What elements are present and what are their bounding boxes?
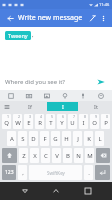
staticText: V [55,152,59,160]
staticText: 3 [29,114,32,119]
button[interactable]: 5 [46,114,55,129]
staticText: , [32,31,34,39]
staticText: If [28,103,32,110]
button[interactable]: More options [98,13,108,23]
button[interactable]: Attach [87,13,98,24]
staticText: M [87,152,93,160]
staticText: 2 [18,114,21,119]
staticText: 8 [84,114,87,119]
button[interactable]: F [40,131,49,146]
button[interactable]: Keyboard menu [0,101,14,112]
button[interactable]: Shift [2,148,17,163]
staticText: E [27,119,31,127]
staticText: R [38,119,42,127]
button[interactable]: Voice [78,91,88,101]
staticText: 123 [5,169,14,176]
button[interactable]: Location [60,91,70,101]
staticText: H [64,135,69,143]
staticText: Where did you see it? [5,78,95,86]
staticText: J [77,135,79,143]
staticText: 1 [7,114,10,119]
button[interactable]: H [62,131,71,146]
staticText: I [82,119,85,127]
button[interactable]: C [41,148,50,163]
button[interactable]: L [95,131,104,146]
button[interactable]: Stickers [6,91,16,101]
button[interactable]: Numbers [2,165,16,180]
staticText: L [98,135,102,143]
button[interactable]: 7 [68,114,77,129]
staticText: I [62,103,64,110]
button[interactable]: I [47,102,78,111]
staticText: G [53,135,58,143]
button[interactable]: Gallery [42,91,52,101]
staticText: 5 [51,114,54,119]
button[interactable]: 0 [101,114,110,129]
button[interactable]: Back [18,184,32,198]
staticText: Z [22,152,26,160]
button[interactable]: Back [4,12,16,24]
button[interactable]: 1 [2,114,11,129]
button[interactable]: 2 [13,114,22,129]
button[interactable]: A [7,131,16,146]
button[interactable]: K [84,131,93,146]
button[interactable]: Recents [81,184,95,198]
staticText: W [15,119,21,127]
staticText: X [33,152,37,160]
staticText: It [94,103,98,110]
button[interactable]: D [29,131,38,146]
button[interactable]: Emoji [96,91,106,101]
staticText: 9 [95,114,98,119]
staticText: S [21,135,25,143]
button[interactable]: Camera [24,91,34,101]
button[interactable]: B [63,148,72,163]
staticText: D [31,135,36,143]
staticText: 4 [40,114,43,119]
staticText: K [87,135,91,143]
button[interactable]: Home [49,184,63,198]
button[interactable]: Send [95,76,107,88]
button[interactable]: , [18,165,27,180]
staticText: C [44,152,48,160]
button[interactable]: Enter [95,165,110,180]
button[interactable]: X [30,148,39,163]
button[interactable]: Backspace [96,148,110,163]
button[interactable]: Tweeny [5,31,31,40]
staticText: 6 [62,114,65,119]
button[interactable]: 4 [35,114,44,129]
staticText: Write new message [18,13,83,23]
staticText: Y [60,119,64,127]
button[interactable]: V [52,148,61,163]
staticText: F [43,135,47,143]
staticText: T [49,119,53,127]
button[interactable]: 3 [24,114,33,129]
staticText: 0 [106,114,109,119]
button[interactable]: . [84,165,93,180]
staticText: , [22,169,24,177]
button[interactable]: N [74,148,83,163]
staticText: Q [4,119,9,127]
button[interactable]: Z [19,148,28,163]
button[interactable]: Space [29,165,82,180]
staticText: A [10,135,14,143]
staticText: 7 [73,114,76,119]
button[interactable]: 9 [90,114,99,129]
staticText: Tweeny [8,32,28,39]
staticText: SwiftKey [47,170,65,176]
staticText: U [70,119,75,127]
button[interactable]: It [80,102,111,111]
button[interactable]: 6 [57,114,66,129]
staticText: O [92,119,97,127]
button[interactable]: If [15,102,45,111]
staticText: . [88,169,90,177]
staticText: N [76,152,81,160]
staticText: B [66,152,70,160]
button[interactable]: 8 [79,114,88,129]
staticText: P [104,119,108,127]
button[interactable]: J [73,131,82,146]
button[interactable]: G [51,131,60,146]
button[interactable]: S [18,131,27,146]
button[interactable]: M [85,148,94,163]
staticText: 11:46 [99,2,110,7]
